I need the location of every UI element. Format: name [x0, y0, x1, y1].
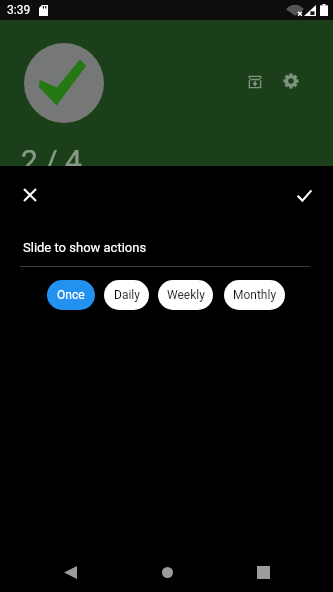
button[interactable]: Settings	[279, 69, 303, 93]
button[interactable]: Home	[147, 553, 187, 592]
staticText: Once	[57, 288, 85, 302]
staticText: Monthly	[233, 288, 277, 302]
staticText: Slide to show actions	[23, 240, 147, 255]
button[interactable]: Close	[18, 183, 42, 207]
button[interactable]: Back	[50, 553, 90, 592]
staticText: Weekly	[167, 288, 205, 302]
button[interactable]: Monthly	[224, 280, 285, 310]
staticText: 2 / 4	[21, 143, 82, 166]
staticText: 3:39	[7, 3, 31, 17]
button[interactable]: Confirm	[292, 183, 316, 207]
button[interactable]: Archive	[243, 70, 267, 94]
button[interactable]: Recents	[243, 553, 283, 592]
button[interactable]: Daily	[104, 280, 149, 310]
button[interactable]: Weekly	[158, 280, 213, 310]
staticText: Daily	[114, 288, 140, 302]
button[interactable]: Once	[47, 280, 95, 310]
